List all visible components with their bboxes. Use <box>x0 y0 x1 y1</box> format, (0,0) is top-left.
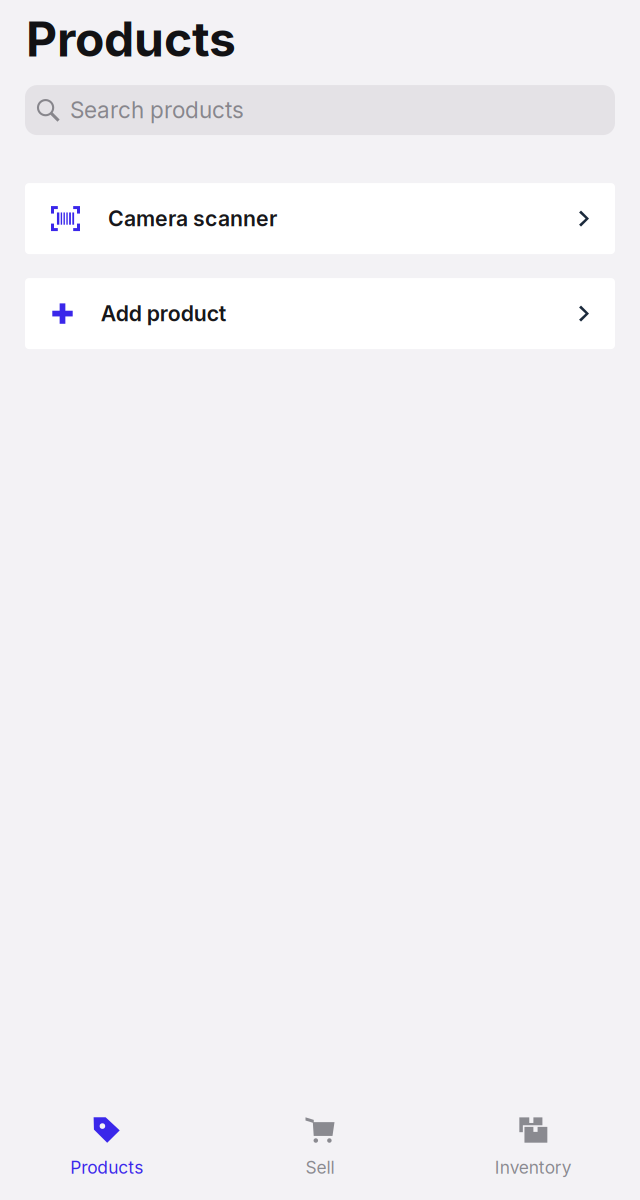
staticText: Sell <box>305 1157 334 1178</box>
staticText: Camera scanner <box>108 206 277 231</box>
staticText: Products <box>26 10 236 68</box>
staticText: Add product <box>101 301 227 326</box>
staticText: Search products <box>70 96 244 124</box>
staticText: Products <box>70 1157 143 1178</box>
button[interactable]: Products <box>0 1115 213 1178</box>
button[interactable]: Inventory <box>427 1115 640 1178</box>
staticText: Inventory <box>495 1157 572 1178</box>
button[interactable]: Sell <box>213 1115 427 1178</box>
button[interactable]: Add product <box>25 278 615 349</box>
button[interactable]: Camera scanner <box>25 183 615 254</box>
